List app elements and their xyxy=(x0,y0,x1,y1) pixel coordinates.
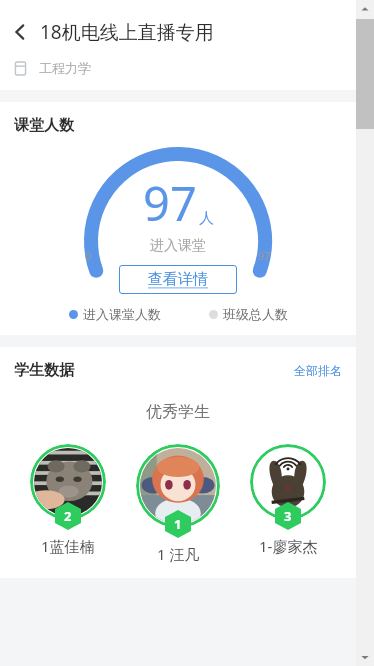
staticText: 3 xyxy=(284,507,292,525)
staticText: 查看详情 xyxy=(148,270,208,289)
button[interactable]: 查看详情 xyxy=(119,265,237,294)
staticText: 全部排名 xyxy=(294,363,342,378)
staticText: 班级总人数 xyxy=(223,306,288,322)
staticText: 课堂人数 xyxy=(14,116,74,135)
staticText: 0 xyxy=(85,248,92,263)
staticText: 1-廖家杰 xyxy=(259,536,318,556)
staticText: 进入课堂 xyxy=(150,237,206,255)
staticText: 97 xyxy=(143,171,197,235)
staticText: 进入课堂人数 xyxy=(83,306,161,322)
staticText: 1 汪凡 xyxy=(157,544,200,564)
staticText: 1蓝佳楠 xyxy=(41,536,95,556)
button[interactable]: 1 xyxy=(136,444,220,564)
staticText: 人 xyxy=(199,209,214,228)
staticText: 优秀学生 xyxy=(146,402,210,422)
staticText: 工程力学 xyxy=(39,60,91,76)
staticText: 学生数据 xyxy=(14,361,74,380)
button[interactable]: 2 xyxy=(30,444,106,556)
staticText: 18机电线上直播专用 xyxy=(40,19,214,45)
button[interactable]: Back xyxy=(0,12,40,52)
button[interactable]: 全部排名 xyxy=(294,363,342,378)
staticText: 97 xyxy=(258,248,271,263)
staticText: 1 xyxy=(174,515,182,533)
staticText: 2 xyxy=(64,507,72,525)
button[interactable]: 3 xyxy=(250,444,326,556)
